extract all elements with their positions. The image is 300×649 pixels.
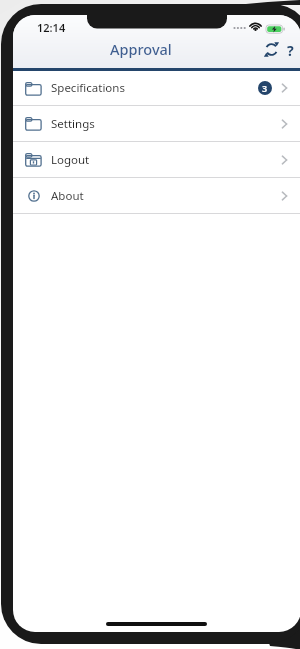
staticText: About [51,188,84,204]
button[interactable]: About [13,178,300,213]
button[interactable]: Settings [13,106,300,141]
button[interactable]: Logout [13,142,300,177]
button[interactable]: ? [282,40,298,60]
staticText: Logout [51,152,90,168]
staticText: 3 [262,82,268,94]
staticText: Settings [51,116,95,132]
staticText: ? [287,41,294,60]
button[interactable] [262,40,281,59]
staticText: Approval [110,39,172,59]
staticText: Specifications [51,80,125,96]
staticText: 12:14 [37,20,66,35]
button[interactable]: Specifications [13,71,300,105]
